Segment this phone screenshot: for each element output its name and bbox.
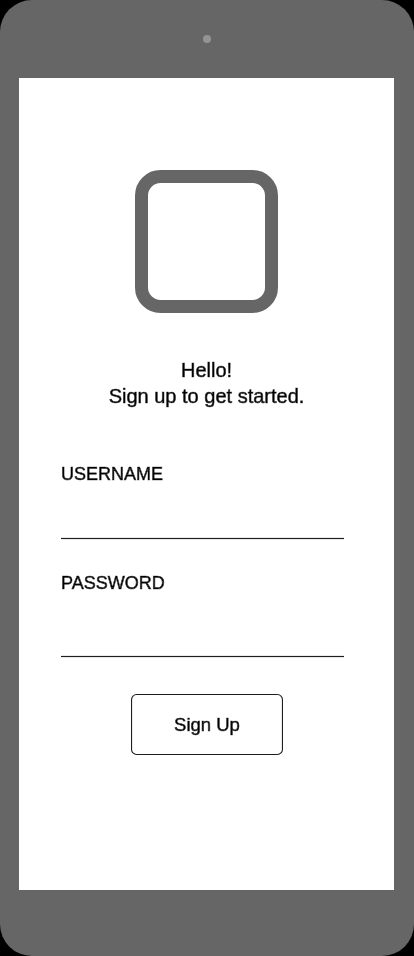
staticText: USERNAME [61, 464, 164, 484]
staticText: USERNAME [61, 464, 164, 484]
button[interactable]: Username input [61, 502, 344, 539]
staticText: Sign Up [131, 714, 283, 735]
staticText: PASSWORD [61, 573, 165, 593]
staticText: PASSWORD [61, 573, 165, 593]
staticText: Hello! Sign up to get started. [19, 359, 394, 407]
other: App logo [135, 170, 278, 313]
staticText: Hello! Sign up to get started. [19, 359, 394, 407]
staticText: Sign Up [131, 714, 283, 735]
button[interactable]: Sign Up [131, 694, 283, 755]
button[interactable]: Password input [61, 620, 344, 656]
